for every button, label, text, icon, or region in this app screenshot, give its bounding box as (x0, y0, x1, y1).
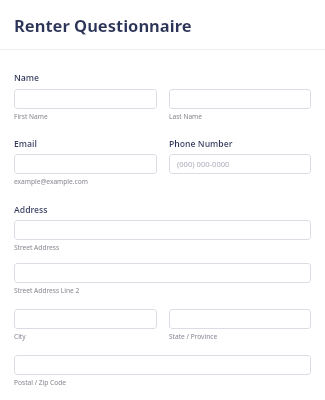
staticText: Phone Number (169, 138, 233, 150)
button[interactable]: (000) 000-0000 (169, 154, 311, 174)
button[interactable] (14, 89, 157, 109)
staticText: Last Name (169, 112, 203, 121)
button[interactable] (169, 309, 311, 329)
staticText: Email (14, 138, 37, 150)
staticText: Name (14, 72, 40, 84)
button[interactable] (14, 263, 311, 283)
staticText: Street Address Line 2 (14, 286, 80, 295)
button[interactable] (14, 220, 311, 240)
staticText: example@example.com (14, 177, 88, 186)
staticText: State / Province (169, 332, 218, 341)
staticText: First Name (14, 112, 48, 121)
staticText: (000) 000-0000 (177, 159, 230, 169)
staticText: Postal / Zip Code (14, 378, 66, 387)
button[interactable] (169, 89, 311, 109)
staticText: City (14, 332, 26, 341)
button[interactable] (14, 355, 311, 375)
button[interactable] (14, 309, 157, 329)
staticText: Address (14, 204, 48, 216)
staticText: Street Address (14, 243, 60, 252)
button[interactable] (14, 154, 157, 174)
staticText: Renter Questionnaire (14, 14, 192, 36)
